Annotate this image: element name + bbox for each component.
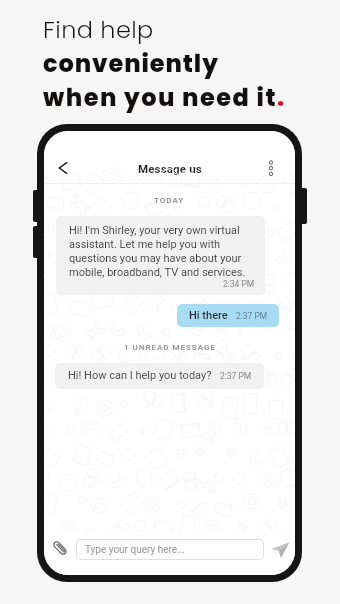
button[interactable]: More options bbox=[263, 160, 279, 176]
button[interactable]: Hi there bbox=[177, 304, 279, 327]
staticText: Hi there bbox=[189, 309, 228, 322]
button[interactable]: Back bbox=[53, 158, 73, 178]
staticText: conveniently bbox=[43, 47, 219, 81]
staticText: when you need it. bbox=[43, 81, 286, 115]
staticText: 2:37 PM bbox=[236, 311, 268, 321]
staticText: 1 UNREAD MESSAGE bbox=[124, 343, 216, 352]
button[interactable]: Type your query here... bbox=[76, 539, 264, 560]
staticText: Find help bbox=[43, 13, 154, 47]
staticText: Type your query here... bbox=[85, 544, 185, 556]
staticText: TODAY bbox=[154, 196, 185, 205]
button[interactable]: Hi! How can I help you today? bbox=[55, 363, 264, 389]
button[interactable]: Hi! I'm Shirley, your very own virtual a… bbox=[56, 216, 265, 295]
staticText: Message us bbox=[138, 162, 202, 175]
button[interactable]: Attach file bbox=[50, 538, 70, 558]
staticText: Hi! I'm Shirley, your very own virtual a… bbox=[69, 224, 255, 279]
staticText: 2:34 PM bbox=[223, 279, 255, 289]
staticText: Hi! How can I help you today? bbox=[68, 369, 212, 382]
button[interactable]: Send bbox=[271, 540, 290, 559]
staticText: 2:37 PM bbox=[220, 371, 252, 381]
